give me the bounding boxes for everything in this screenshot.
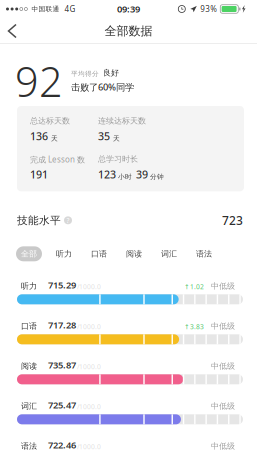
staticText: 39 [136,167,148,181]
staticText: 中低级 [211,321,235,331]
staticText: 722.46 [48,439,76,451]
staticText: 93% [200,4,217,14]
staticText: 总达标天数 [30,116,70,126]
staticText: 口语 [21,321,37,331]
button[interactable]: 词汇 [17,400,243,424]
staticText: /1000.0 [77,282,101,291]
staticText: 分钟 [150,173,164,181]
staticText: ? [66,216,69,225]
staticText: 717.28 [48,319,76,331]
button[interactable]: 全部 [16,246,42,261]
staticText: 击败了60%同学 [71,81,134,93]
staticText: 全部数据 [104,24,152,38]
button[interactable]: 听力 [17,280,243,304]
button[interactable]: 听力 [51,246,77,261]
button[interactable]: 口语 [17,320,243,344]
staticText: /1000.0 [77,322,101,331]
staticText: 口语 [91,249,107,259]
staticText: 连续达标天数 [98,116,146,126]
staticText: 词汇 [21,401,37,411]
staticText: 4G [64,4,75,14]
staticText: 191 [30,167,48,181]
button[interactable]: 返回 [0,19,26,42]
staticText: 735.87 [48,359,76,371]
staticText: 完成 Lesson 数 [30,154,85,165]
staticText: 总学习时长 [98,154,138,164]
staticText: 听力 [56,249,72,259]
staticText: 92 [15,54,63,108]
staticText: 723 [222,212,243,228]
staticText: 全部 [21,249,37,259]
button[interactable]: 词汇 [156,246,182,261]
staticText: 中国联通 [31,5,59,13]
staticText: 09:39 [117,3,140,15]
staticText: 715.29 [48,279,76,291]
staticText: 天 [113,134,120,143]
staticText: /1000.0 [77,402,101,411]
staticText: 中低级 [211,441,235,451]
staticText: 技能水平 [17,214,61,227]
staticText: 词汇 [161,249,177,259]
staticText: 天 [51,134,58,143]
staticText: ↑3.83 [184,322,204,331]
staticText: ↑1.02 [184,282,204,291]
staticText: 中低级 [211,281,235,291]
button[interactable]: 语法 [17,440,243,453]
staticText: /1000.0 [77,362,101,371]
staticText: 良好 [103,68,119,78]
staticText: 平均得分 [71,70,99,78]
staticText: /1000.0 [77,442,101,451]
button[interactable]: 阅读 [17,360,243,384]
button[interactable]: 口语 [86,246,112,261]
staticText: 中低级 [211,401,235,411]
staticText: 语法 [21,441,37,451]
staticText: 725.47 [48,399,76,411]
button[interactable]: 阅读 [121,246,147,261]
staticText: 136 [30,129,48,143]
staticText: 语法 [196,249,212,259]
button[interactable]: 语法 [191,246,217,261]
staticText: 听力 [21,281,37,291]
staticText: 35 [98,129,110,143]
staticText: 阅读 [21,361,37,371]
staticText: 中低级 [211,361,235,371]
button[interactable]: 技能水平说明 [62,214,74,226]
staticText: 123 [98,167,116,181]
staticText: 小时 [118,173,132,181]
staticText: 阅读 [126,249,142,259]
